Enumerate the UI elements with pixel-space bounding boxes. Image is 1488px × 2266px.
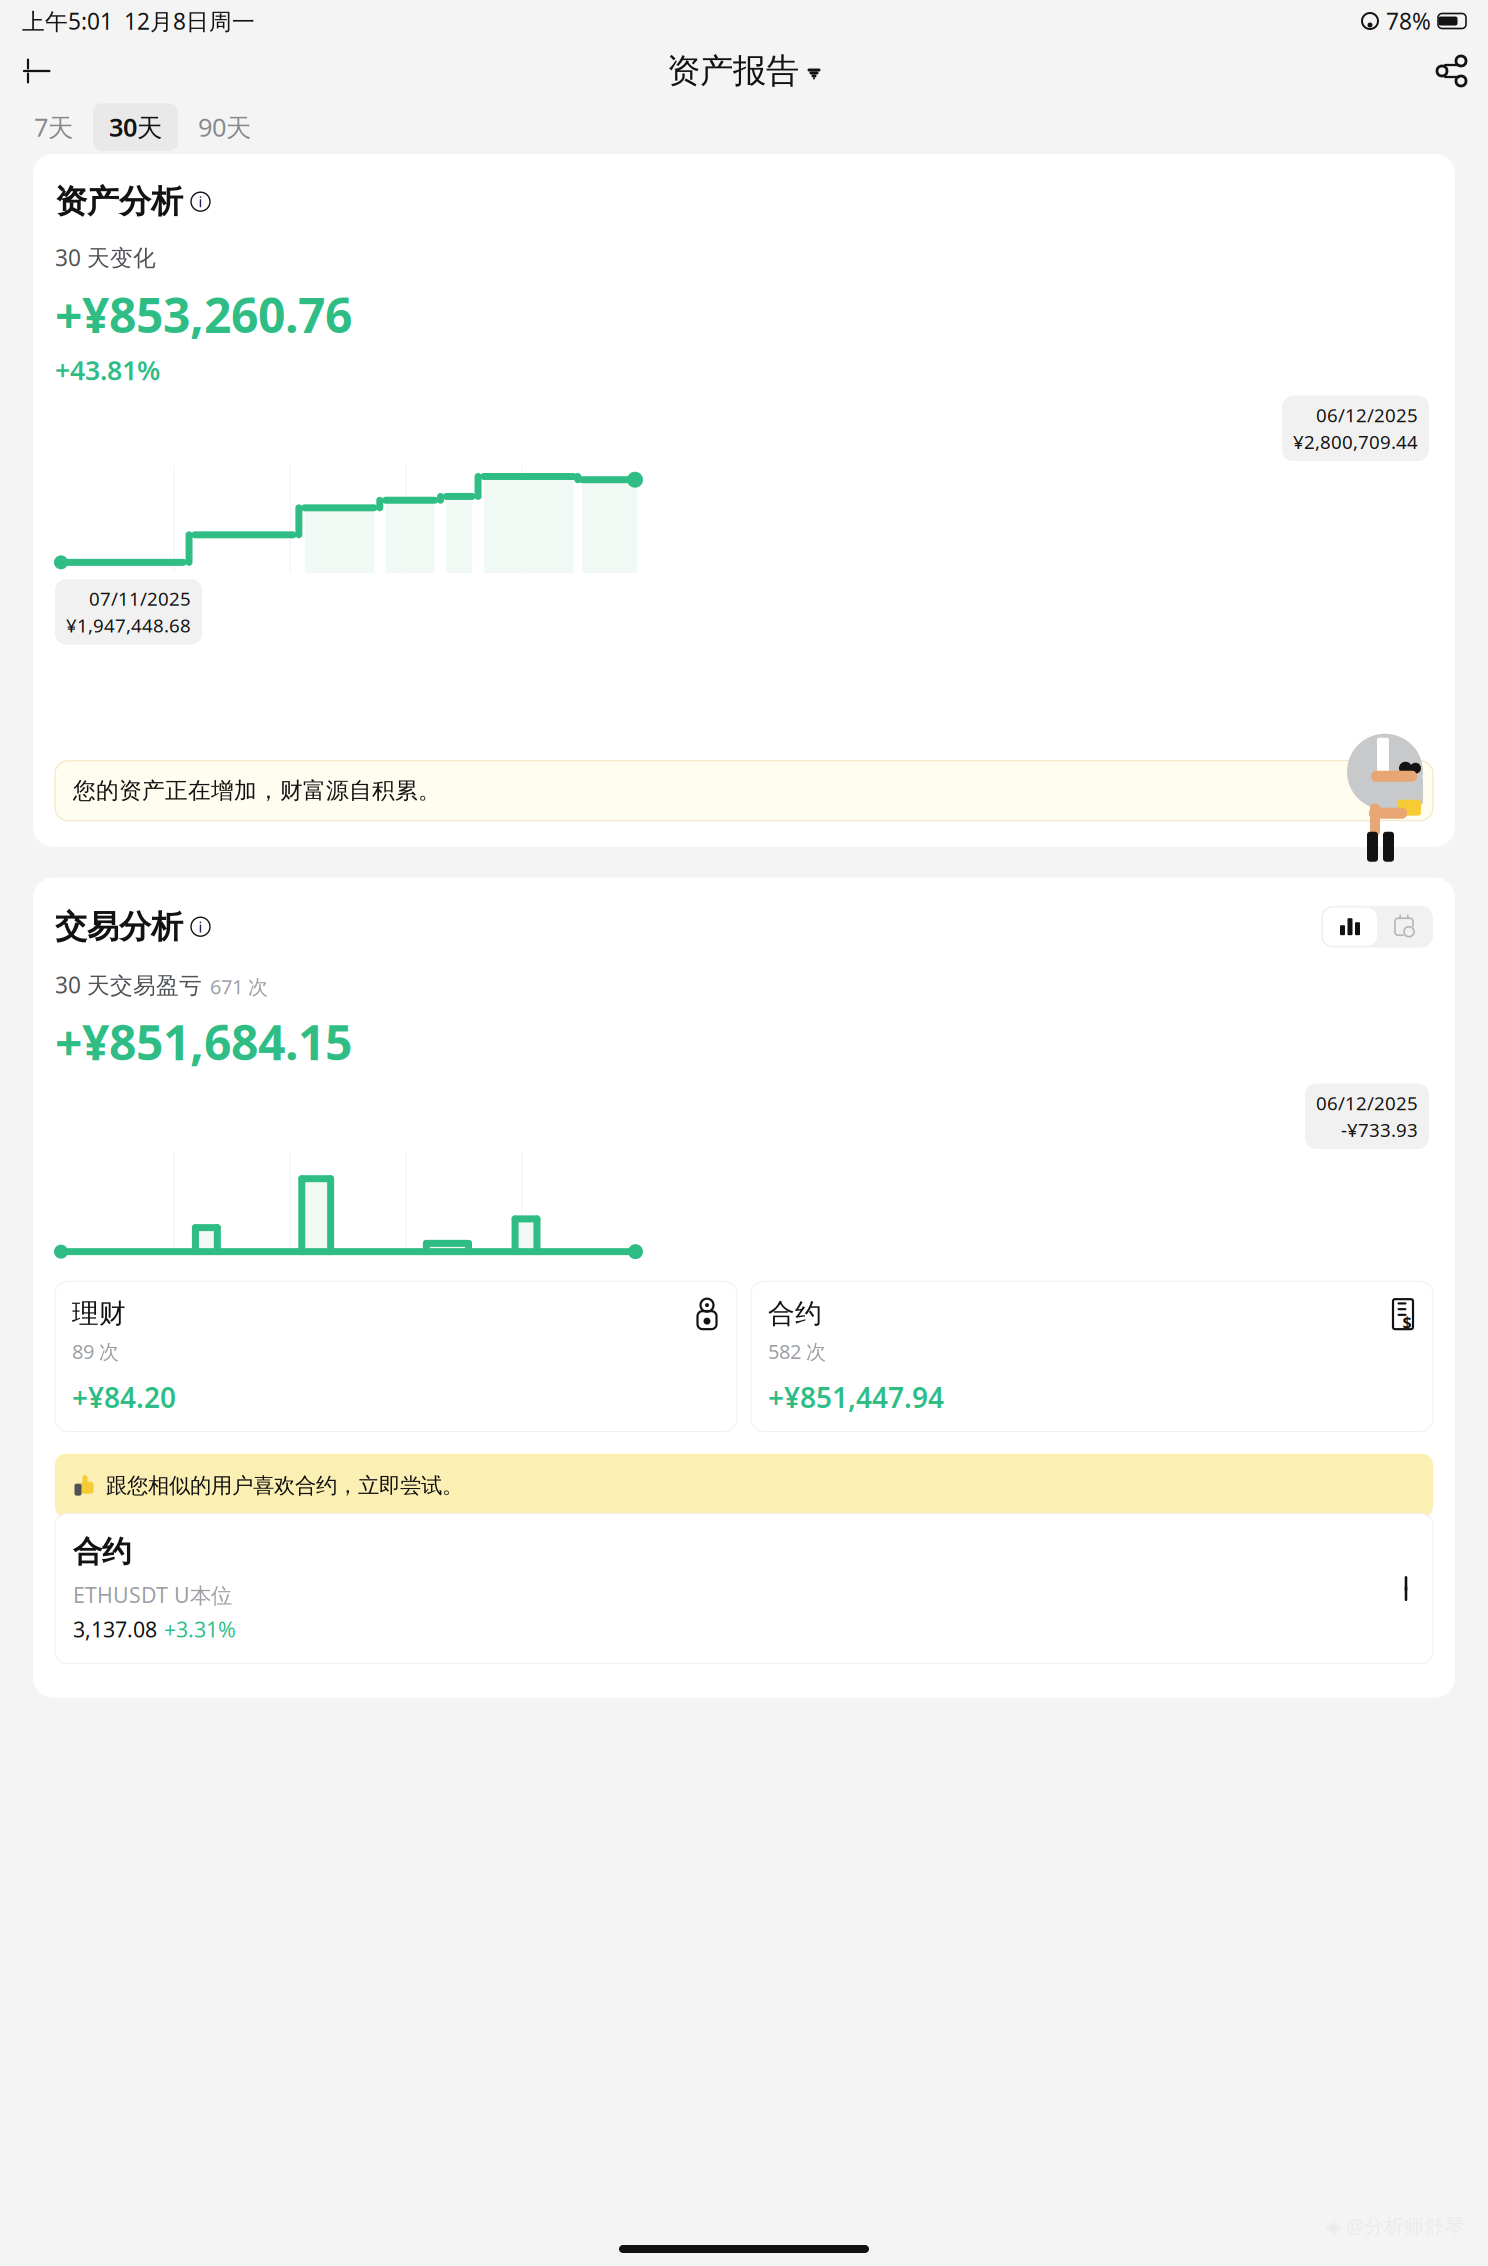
staticText: 合约 <box>768 1297 822 1330</box>
staticText: 90天 <box>198 110 251 144</box>
staticText: ◈ <box>1326 2214 1341 2237</box>
button[interactable]: 合约 <box>751 1281 1433 1432</box>
button[interactable]: 合约 <box>55 1514 1433 1663</box>
staticText: +¥853,260.76 <box>55 282 352 346</box>
staticText: 合约 <box>73 1534 131 1570</box>
staticText: +¥84.20 <box>72 1378 176 1416</box>
staticText: 07/11/2025 <box>89 586 191 611</box>
staticText: +43.81% <box>55 352 160 387</box>
staticText: 您的资产正在增加，财富源自积累。 <box>73 777 441 805</box>
staticText: 78% <box>1386 6 1431 36</box>
staticText: 30天 <box>109 110 162 144</box>
button[interactable]: 90天 <box>182 103 267 151</box>
button[interactable]: 理财 <box>55 1281 737 1432</box>
button[interactable]: 关于资产分析 <box>191 192 210 211</box>
staticText: 671 次 <box>210 973 268 1000</box>
staticText: 30 天交易盈亏 <box>55 970 202 1000</box>
button[interactable]: 日历 <box>1377 908 1431 946</box>
button[interactable]: Back <box>20 54 54 88</box>
staticText: 89 次 <box>72 1338 119 1364</box>
staticText: +¥851,447.94 <box>768 1378 944 1416</box>
staticText: 7天 <box>34 110 73 144</box>
staticText: 3,137.08 <box>73 1615 157 1643</box>
staticText: 理财 <box>72 1297 126 1330</box>
button[interactable]: 柱状图 <box>1323 908 1377 946</box>
staticText: ETHUSDT U本位 <box>73 1581 232 1609</box>
staticText: -¥733.93 <box>1341 1117 1418 1142</box>
staticText: 06/12/2025 <box>1316 1091 1418 1115</box>
button[interactable]: 资产报告 <box>667 50 821 91</box>
button[interactable]: 30天 <box>93 103 178 151</box>
staticText: i <box>198 192 202 211</box>
button[interactable]: 关于交易分析 <box>191 917 210 936</box>
button[interactable]: Share <box>1434 54 1468 88</box>
staticText: ¥1,947,448.68 <box>66 613 191 638</box>
staticText: ¥2,800,709.44 <box>1293 429 1418 454</box>
staticText: +3.31% <box>164 1615 236 1643</box>
staticText: @分析师舒琴 <box>1346 2212 1464 2239</box>
button[interactable]: 7天 <box>18 103 89 151</box>
staticText: 资产报告 <box>667 50 799 91</box>
staticText: $ <box>1402 1311 1411 1333</box>
staticText: 交易分析 <box>55 907 183 946</box>
staticText: 582 次 <box>768 1338 826 1364</box>
staticText: +¥851,684.15 <box>55 1010 352 1073</box>
staticText: 资产分析 <box>55 182 183 221</box>
staticText: 上午5:01 <box>22 6 113 36</box>
staticText: 30 天变化 <box>55 242 156 272</box>
staticText: 12月8日周一 <box>124 6 255 36</box>
staticText: i <box>198 917 202 936</box>
staticText: 06/12/2025 <box>1316 403 1418 427</box>
staticText: 跟您相似的用户喜欢合约，立即尝试。 <box>106 1472 463 1499</box>
